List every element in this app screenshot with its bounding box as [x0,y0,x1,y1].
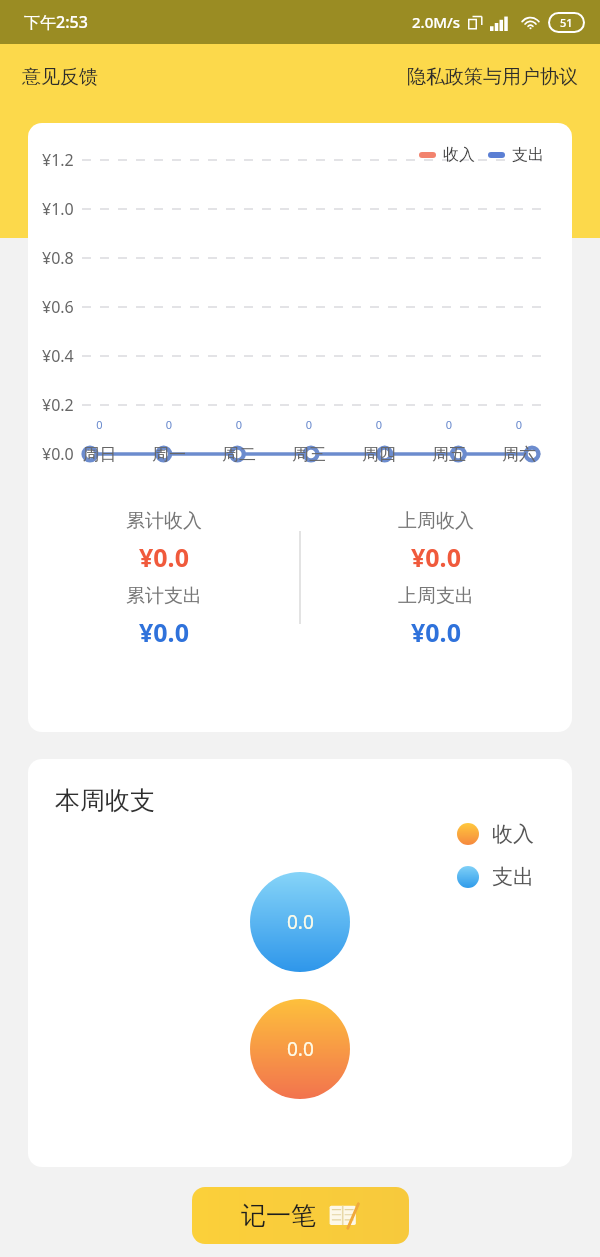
staticText: 本周收支 [55,785,155,816]
staticText: 周五 [414,444,484,465]
staticText: 隐私政策与用户协议 [407,65,578,89]
staticText: 2.0M/s [412,12,461,32]
staticText: ¥0.0 [42,443,74,465]
staticText: 周三 [274,444,344,465]
staticText: 累计支出 [126,584,202,608]
staticText: 51 [560,15,573,30]
staticText: 0 [484,417,554,432]
staticText: 支出 [512,145,544,165]
staticText: ¥0.6 [42,296,74,318]
button[interactable]: 记一笔 [192,1187,409,1244]
staticText: ¥0.8 [42,247,74,269]
other: Notebook [328,1200,360,1232]
staticText: ¥1.0 [42,198,74,220]
staticText: 支出 [492,864,534,890]
staticText: 收入 [492,821,534,847]
staticText: 累计收入 [126,509,202,533]
staticText: 上周收入 [398,509,474,533]
button[interactable]: 隐私政策与用户协议 [393,56,592,98]
staticText: ¥0.2 [42,394,74,416]
staticText: 0 [65,417,134,432]
staticText: ¥0.0 [411,615,461,649]
staticText: ¥0.0 [411,540,461,574]
staticText: 周一 [134,444,204,465]
staticText: 上周支出 [398,584,474,608]
staticText: 0 [134,417,204,432]
staticText: 周日 [65,444,134,465]
staticText: 0 [204,417,274,432]
staticText: 下午2:53 [24,11,88,33]
staticText: ¥0.0 [139,540,189,574]
staticText: 0 [414,417,484,432]
staticText: 0 [344,417,414,432]
staticText: 0 [274,417,344,432]
button[interactable]: 意见反馈 [8,56,112,98]
staticText: ¥0.0 [139,615,189,649]
staticText: ¥0.4 [42,345,74,367]
staticText: 收入 [443,145,475,165]
staticText: 周四 [344,444,414,465]
staticText: 周二 [204,444,274,465]
staticText: 记一笔 [241,1200,316,1231]
staticText: 0.0 [287,909,314,935]
staticText: 意见反馈 [22,65,98,89]
staticText: 周六 [484,444,554,465]
staticText: ¥1.2 [42,149,74,171]
staticText: 0.0 [287,1036,314,1062]
